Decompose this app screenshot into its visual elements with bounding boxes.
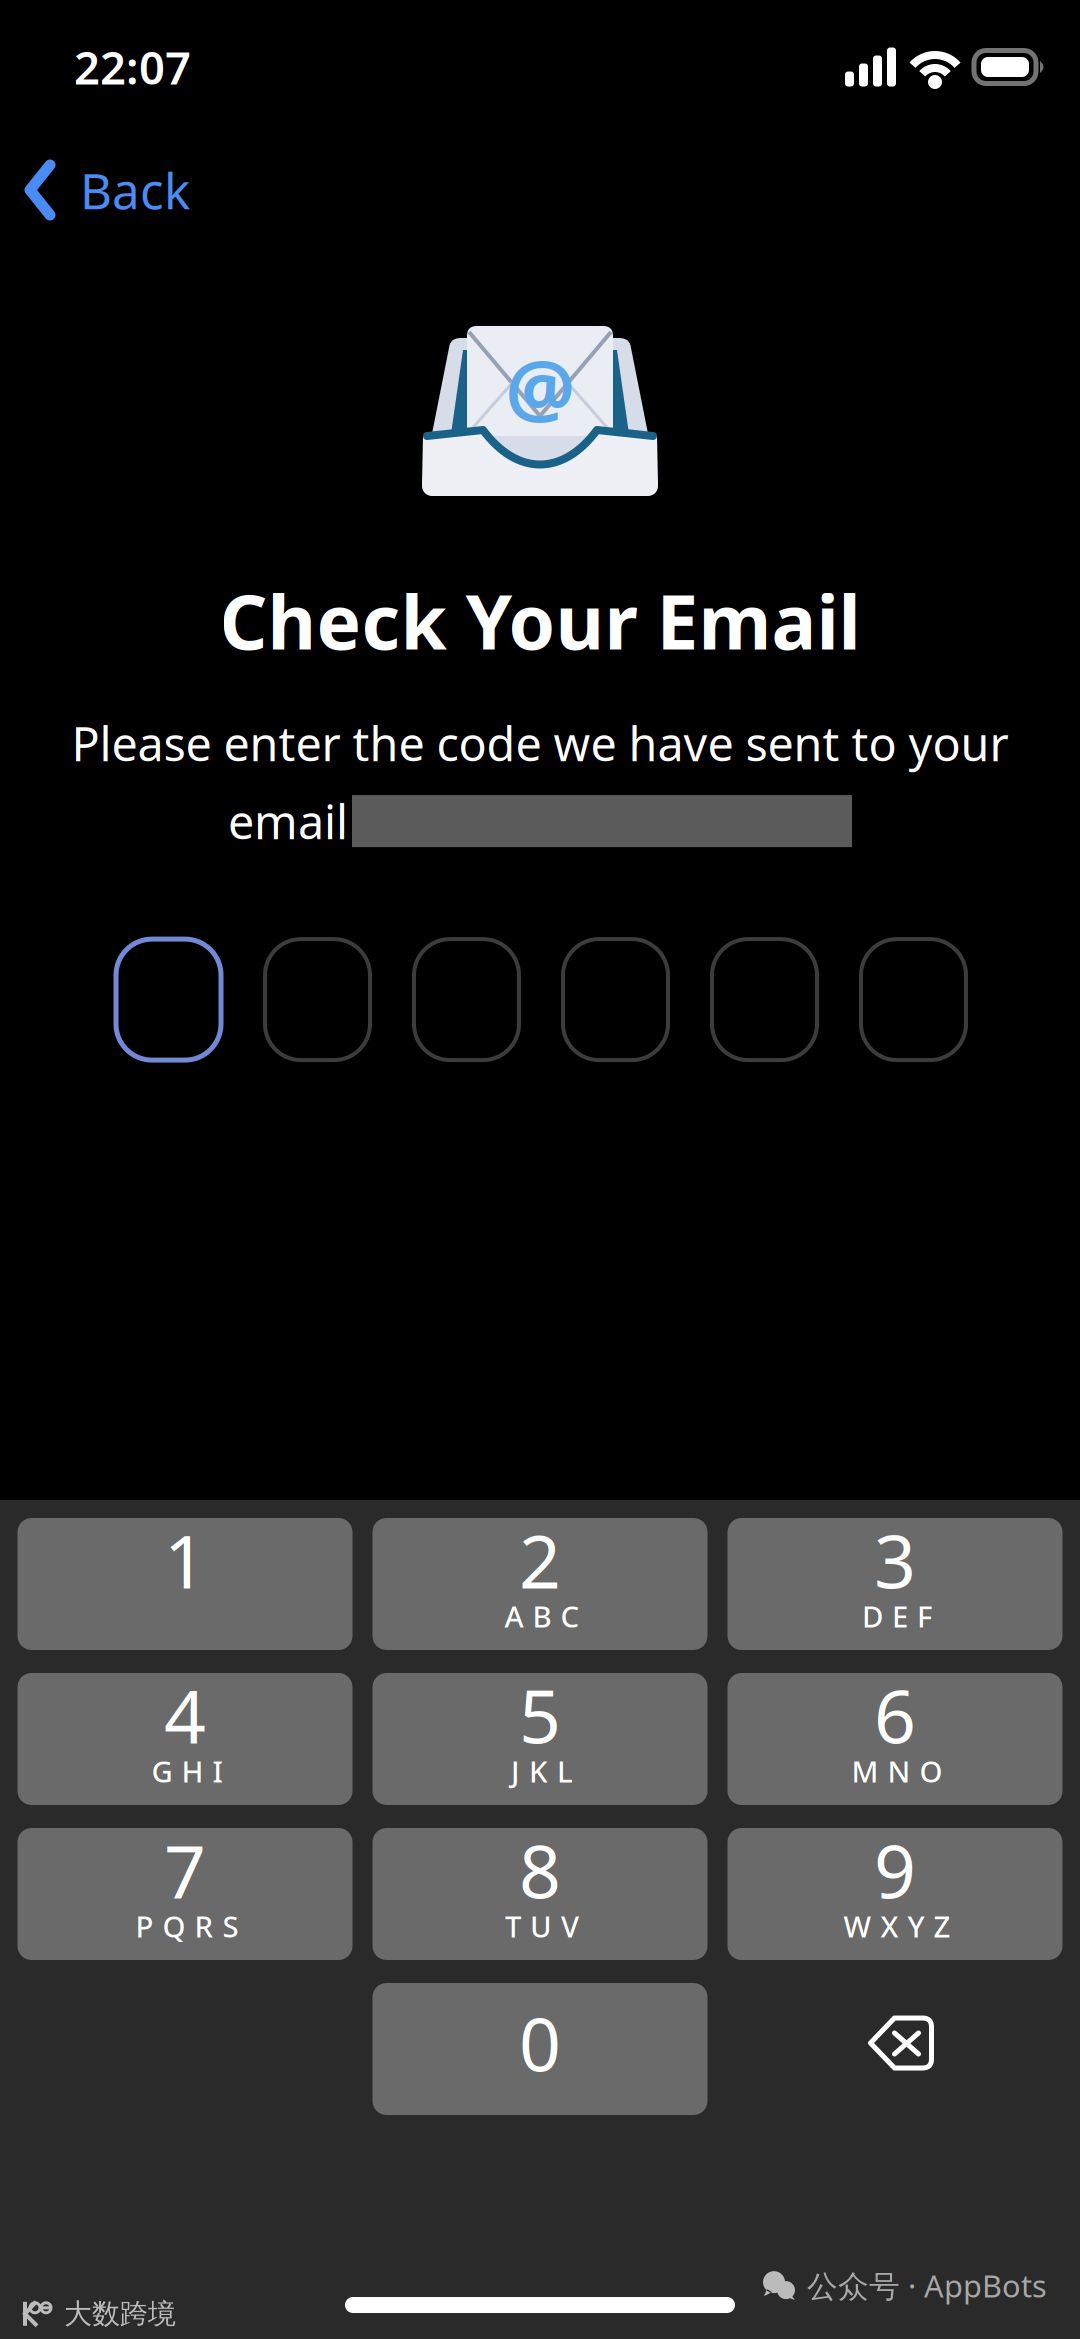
staticText: Please enter the code we have sent to yo… <box>71 712 1008 774</box>
staticText: MNO <box>851 1751 942 1790</box>
staticText: @ <box>505 336 574 438</box>
staticText: Back <box>80 157 190 223</box>
button[interactable]: 1 <box>17 1518 352 1650</box>
staticText: 4 <box>164 1666 206 1764</box>
staticText: 22:07 <box>74 37 191 97</box>
button[interactable]: 9 <box>727 1828 1062 1960</box>
button[interactable]: Delete <box>727 1983 1062 2115</box>
staticText: DEF <box>862 1596 932 1635</box>
button[interactable]: 7 <box>17 1828 352 1960</box>
staticText: 2 <box>519 1511 561 1609</box>
button[interactable]: 5 <box>372 1673 707 1805</box>
staticText: 5 <box>519 1666 561 1764</box>
button[interactable]: 8 <box>372 1828 707 1960</box>
staticText: JKL <box>511 1751 573 1790</box>
staticText: 大数跨境 <box>64 2297 176 2331</box>
button[interactable]: Back <box>0 134 220 246</box>
staticText: 6 <box>874 1666 916 1764</box>
staticText: Check Your Email <box>219 571 860 670</box>
staticText: 公众号 · AppBots <box>807 2265 1047 2306</box>
staticText: email <box>228 790 348 852</box>
staticText: 9 <box>874 1821 916 1919</box>
staticText: TUV <box>505 1906 579 1945</box>
button[interactable]: 6 <box>727 1673 1062 1805</box>
button[interactable]: 4 <box>17 1673 352 1805</box>
staticText: 8 <box>519 1821 561 1919</box>
staticText: 1 <box>164 1511 206 1609</box>
button[interactable]: 3 <box>727 1518 1062 1650</box>
staticText: WXYZ <box>843 1906 950 1945</box>
staticText: PQRS <box>135 1906 238 1945</box>
staticText: 0 <box>519 1994 561 2092</box>
staticText: 7 <box>164 1821 206 1919</box>
button[interactable]: 2 <box>372 1518 707 1650</box>
staticText: ABC <box>504 1596 579 1635</box>
staticText: 3 <box>874 1511 916 1609</box>
button[interactable]: 0 <box>372 1983 707 2115</box>
staticText: GHI <box>151 1751 222 1790</box>
